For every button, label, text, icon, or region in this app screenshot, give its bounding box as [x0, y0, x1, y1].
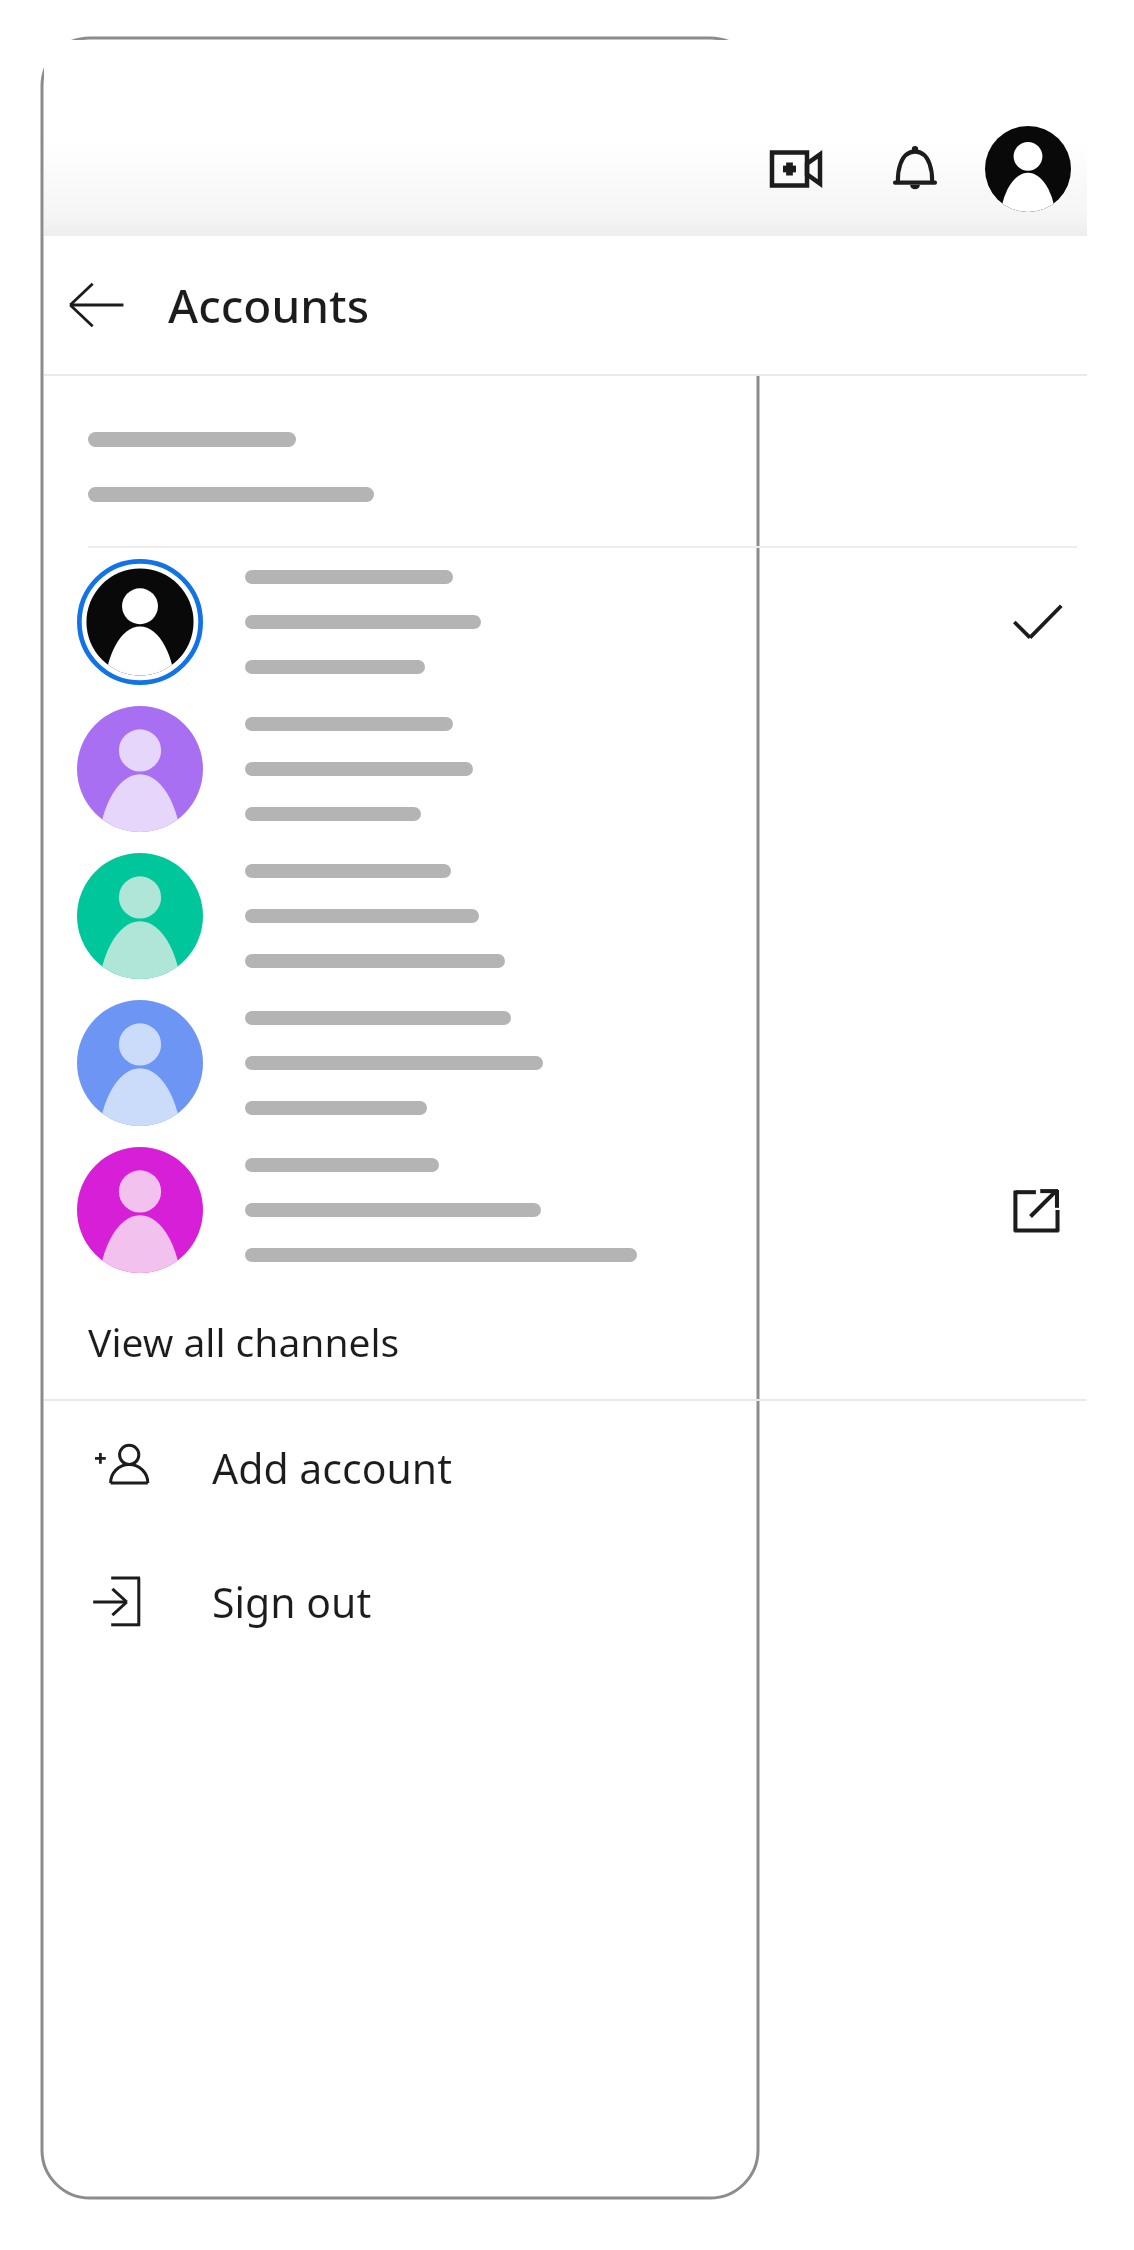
button[interactable]: Create video	[753, 125, 841, 213]
button[interactable]: Notifications	[871, 125, 959, 213]
staticText: Accounts	[168, 274, 370, 337]
button[interactable]	[44, 842, 1087, 989]
button[interactable]: Sign out	[44, 1535, 1087, 1669]
button[interactable]	[44, 1136, 1087, 1283]
button[interactable]	[44, 695, 1087, 842]
staticText: Add account	[212, 1440, 452, 1496]
button[interactable]	[44, 548, 1087, 695]
button[interactable]: Back	[44, 253, 148, 357]
staticText: Sign out	[212, 1574, 372, 1630]
button[interactable]: Account	[981, 122, 1075, 216]
button[interactable]: Add account	[44, 1401, 1087, 1535]
button[interactable]	[44, 989, 1087, 1136]
button[interactable]: View all channels	[44, 1283, 1087, 1399]
staticText: View all channels	[88, 1315, 400, 1368]
